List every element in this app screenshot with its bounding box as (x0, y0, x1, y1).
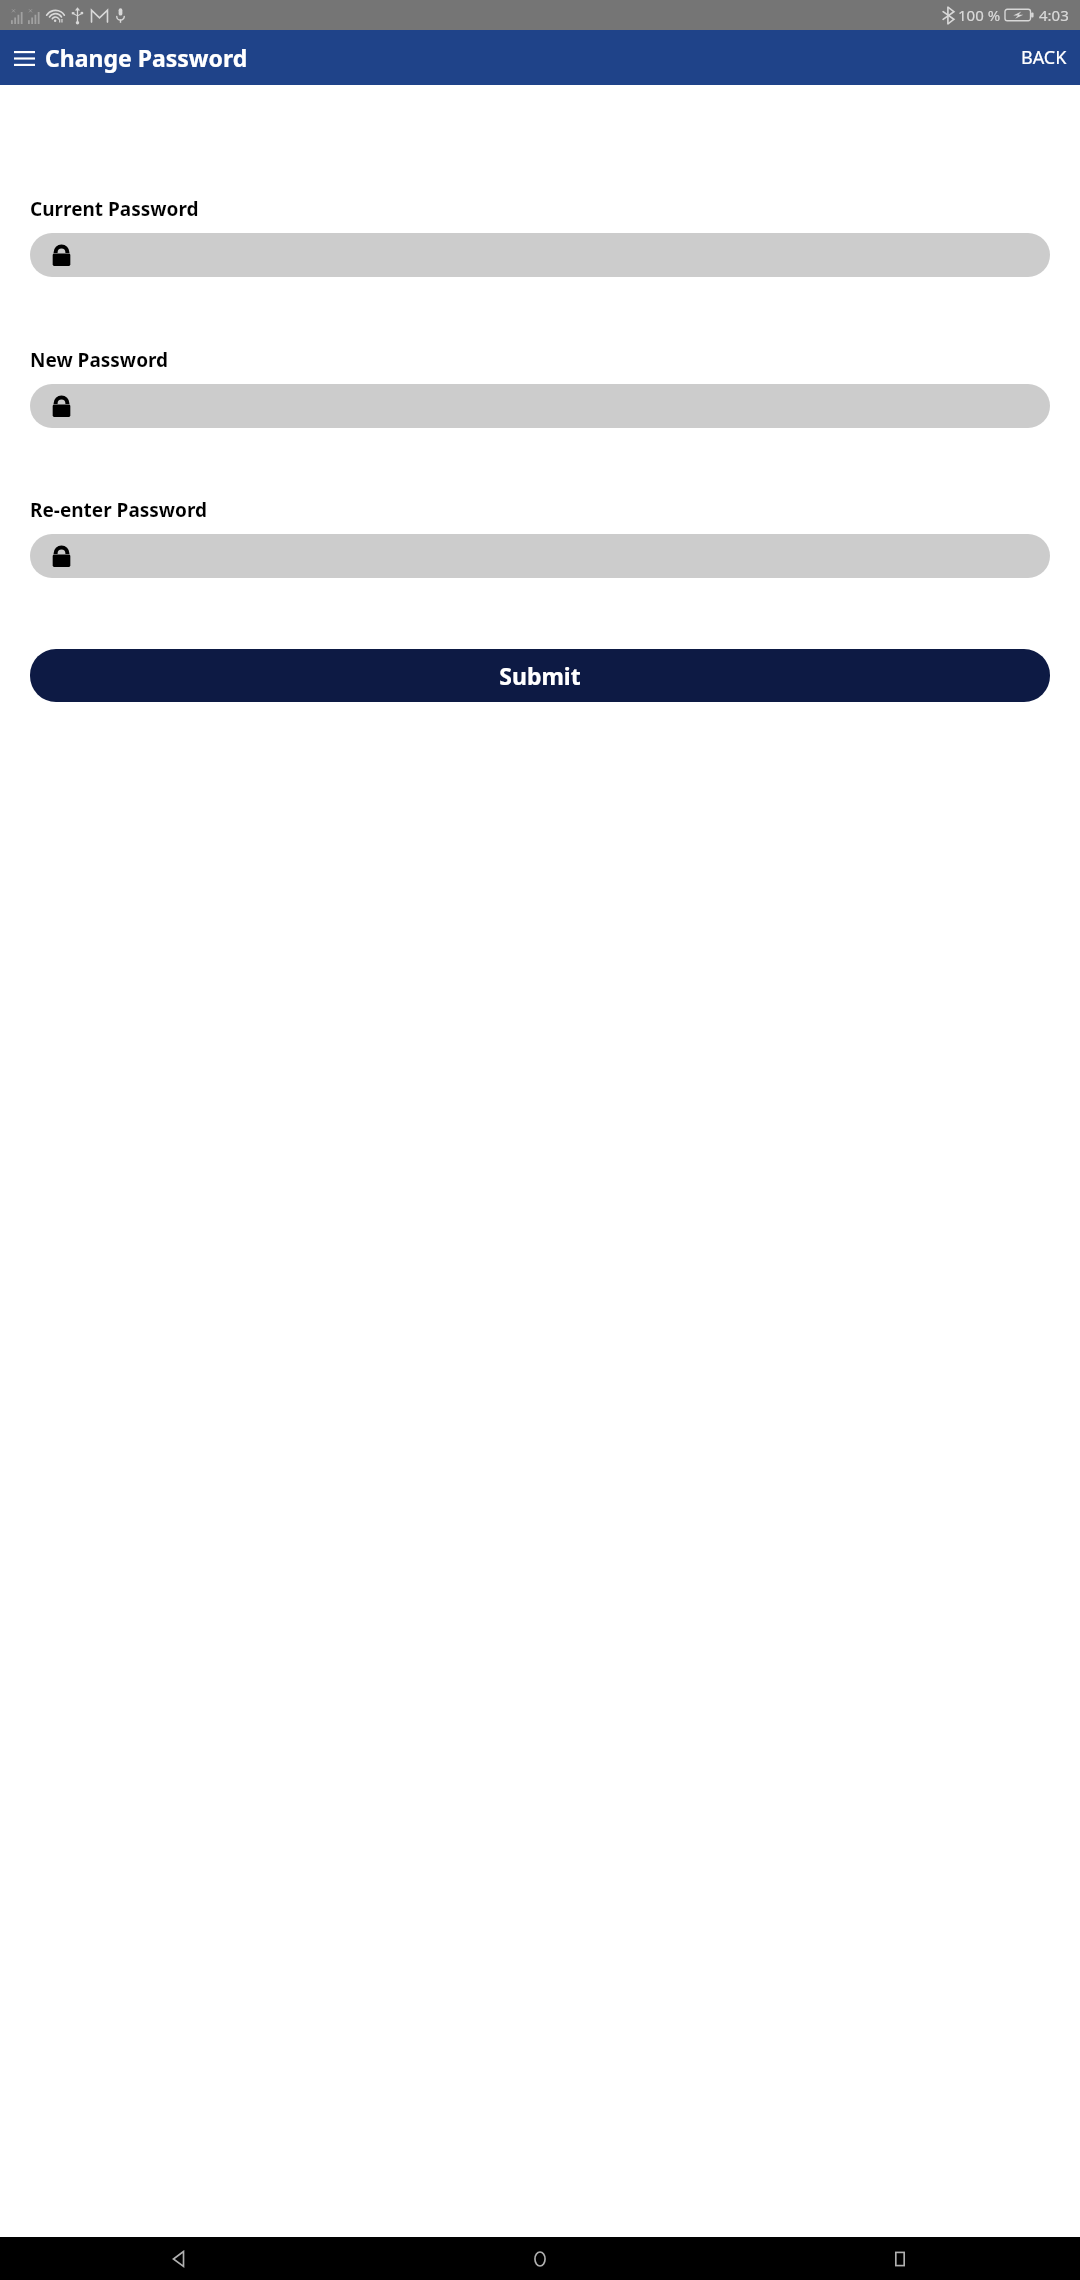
staticText: Re-enter Password (30, 497, 208, 523)
staticText: Change Password (45, 42, 248, 73)
staticText: BACK (1021, 45, 1067, 70)
button[interactable]: Home (360, 2237, 720, 2280)
staticText: Submit (499, 660, 581, 691)
staticText: Current Password (30, 196, 199, 222)
button[interactable]: Submit (30, 649, 1050, 702)
button[interactable] (30, 384, 1050, 428)
button[interactable]: Open navigation menu (4, 36, 44, 80)
button[interactable]: Back (0, 2237, 360, 2280)
button[interactable] (30, 534, 1050, 578)
staticText: 4:03 (1039, 5, 1069, 25)
button[interactable] (30, 233, 1050, 277)
staticText: 100 % (958, 5, 1001, 25)
staticText: New Password (30, 347, 169, 373)
button[interactable]: BACK (1008, 37, 1080, 78)
button[interactable]: Recent apps (720, 2237, 1080, 2280)
